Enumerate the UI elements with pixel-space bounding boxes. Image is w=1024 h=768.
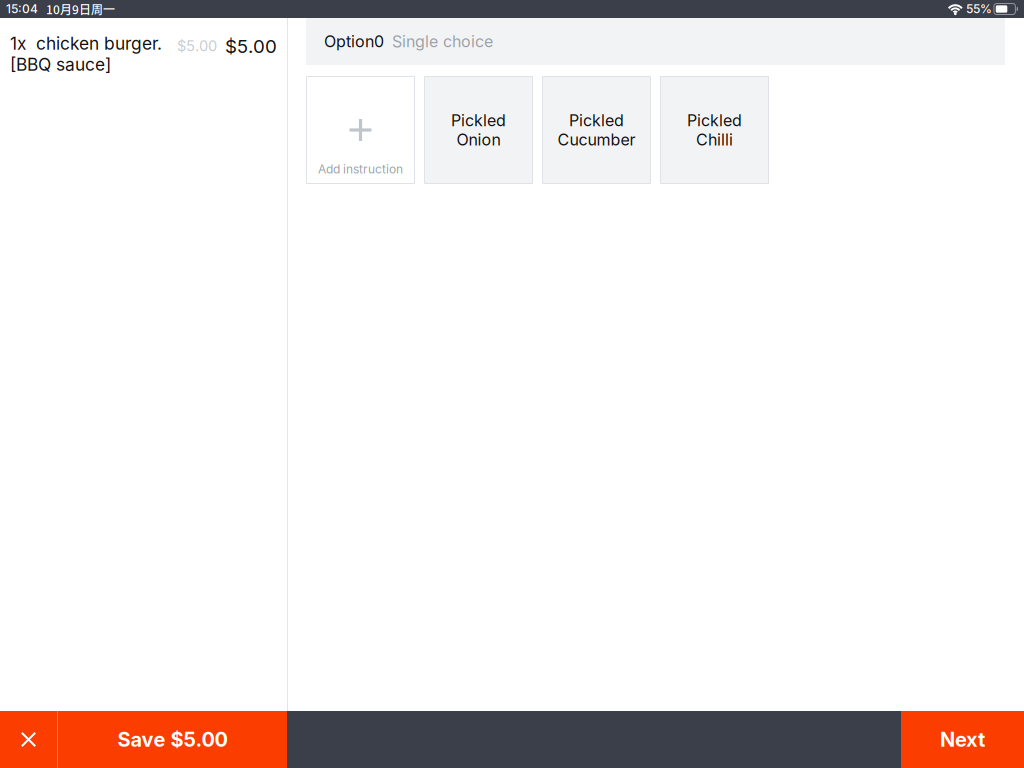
button[interactable]: 1x (0, 18, 287, 83)
button[interactable]: Pickled (424, 76, 532, 183)
staticText: Pickled (451, 111, 506, 130)
button[interactable]: Close (0, 711, 57, 768)
staticText: Save $5.00 (117, 727, 227, 752)
staticText: Pickled (569, 111, 624, 130)
button[interactable]: Pickled (542, 76, 650, 183)
staticText: 1x (10, 33, 26, 54)
staticText: chicken burger. (36, 33, 162, 54)
staticText: $5.00 (177, 37, 217, 55)
staticText: Chilli (696, 130, 733, 149)
staticText: Next (940, 727, 985, 752)
staticText: Pickled (687, 111, 742, 130)
button[interactable]: Save $5.00 (58, 711, 287, 768)
staticText: Single choice (392, 32, 493, 51)
staticText: $5.00 (225, 35, 277, 58)
staticText: 55% (966, 2, 992, 16)
staticText: Option0 (324, 32, 384, 51)
button[interactable]: Pickled (660, 76, 768, 183)
staticText: 15:04 (6, 2, 38, 16)
staticText: [BBQ sauce] (10, 54, 111, 75)
button[interactable]: Next (901, 711, 1024, 768)
staticText: Onion (456, 130, 500, 149)
staticText: Add instruction (318, 162, 403, 176)
button[interactable]: Add instruction (306, 76, 414, 183)
staticText: Cucumber (557, 130, 635, 149)
staticText: 10月9日周一 (46, 0, 115, 18)
